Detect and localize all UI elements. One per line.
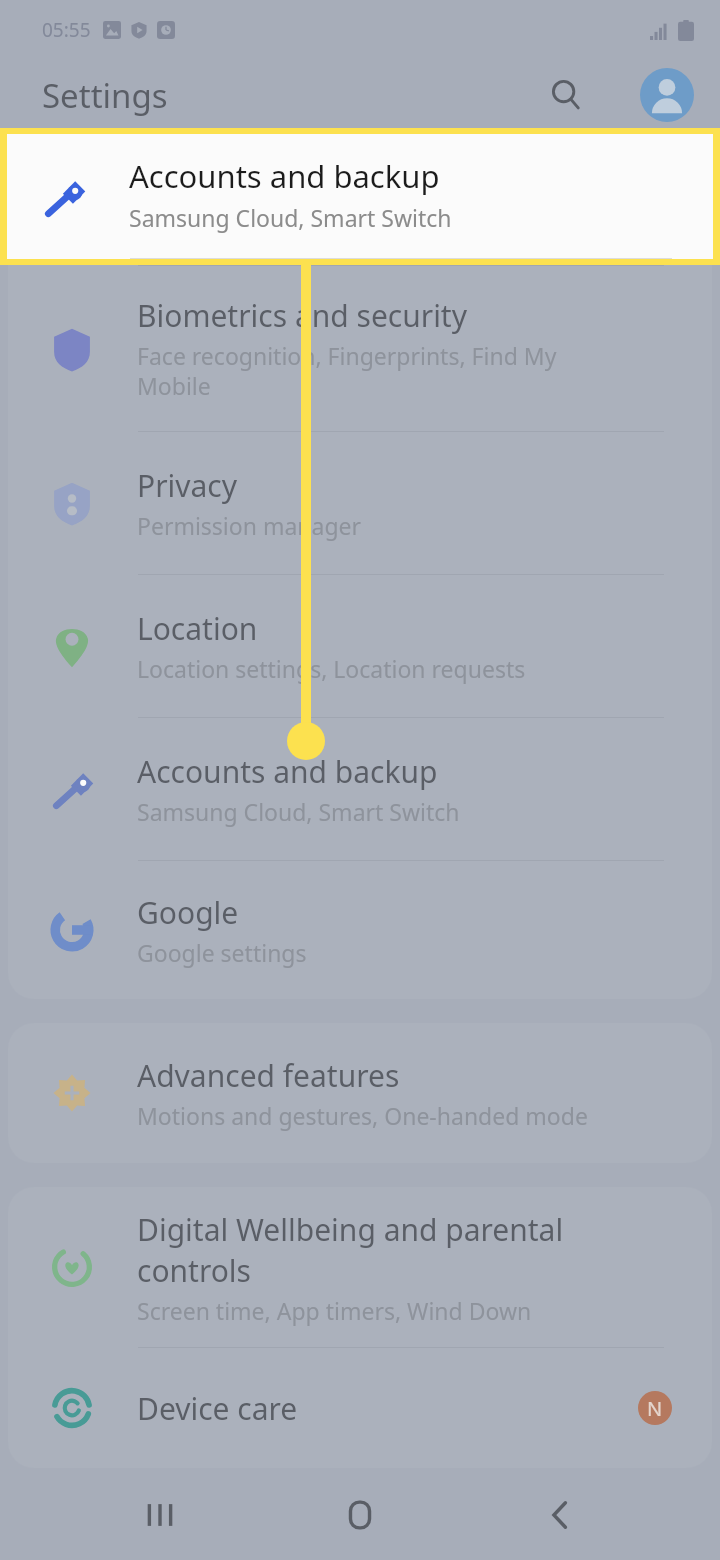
staticText: Privacy [137, 465, 238, 506]
staticText: Accounts and backup [137, 751, 438, 792]
button[interactable]: Recents [120, 1475, 200, 1555]
staticText: Permission manager [137, 510, 362, 541]
button[interactable]: Search [542, 71, 590, 119]
button[interactable]: Home [320, 1475, 400, 1555]
staticText: Settings [42, 73, 168, 118]
staticText: Samsung Cloud, Smart Switch [137, 796, 460, 827]
button[interactable]: Accounts and backup [7, 134, 713, 259]
staticText: 05:55 [42, 17, 91, 43]
button[interactable]: Location [8, 575, 712, 717]
staticText: N [647, 1395, 663, 1422]
staticText: Samsung Cloud, Smart Switch [137, 206, 460, 237]
button[interactable]: Device care [8, 1348, 712, 1468]
button[interactable]: Accounts and backup [8, 718, 712, 860]
staticText: Accounts and backup [137, 161, 438, 202]
button[interactable]: Privacy [8, 432, 712, 574]
staticText: Advanced features [137, 1055, 400, 1096]
button[interactable]: Google [8, 861, 712, 999]
button[interactable]: Biometrics and security [8, 266, 712, 431]
button[interactable]: Advanced features [8, 1023, 712, 1163]
staticText: Biometrics and security [137, 295, 467, 336]
staticText: Screen time, App timers, Wind Down [137, 1295, 532, 1326]
staticText: Samsung Cloud, Smart Switch [129, 202, 452, 233]
button[interactable]: Account profile [640, 68, 694, 122]
button[interactable]: Accounts and backup [8, 133, 712, 265]
staticText: Location [137, 608, 258, 649]
button[interactable]: Back [520, 1475, 600, 1555]
button[interactable]: Digital Wellbeing and parental controls [8, 1187, 712, 1347]
staticText: Google settings [137, 937, 307, 968]
staticText: Device care [137, 1388, 298, 1429]
staticText: Digital Wellbeing and parental controls [137, 1209, 564, 1291]
staticText: Google [137, 892, 239, 933]
staticText: Location settings, Location requests [137, 653, 526, 684]
staticText: Accounts and backup [129, 155, 440, 197]
staticText: Face recognition, Fingerprints, Find My … [137, 340, 557, 402]
staticText: Motions and gestures, One-handed mode [137, 1100, 588, 1131]
